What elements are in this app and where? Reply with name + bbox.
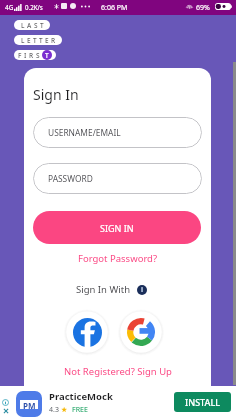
staticText: PM xyxy=(23,400,36,409)
staticText: FREE xyxy=(72,405,88,415)
button[interactable]: Forgot Password? xyxy=(78,252,158,265)
staticText: T xyxy=(40,21,44,30)
staticText: T xyxy=(33,36,37,45)
staticText: 4.3 xyxy=(49,405,59,415)
staticText: ★ xyxy=(61,406,68,414)
button[interactable]: Not Registered? Sign Up xyxy=(64,365,172,378)
staticText: F xyxy=(18,51,22,60)
staticText: Sign In xyxy=(33,85,79,104)
staticText: E xyxy=(45,36,49,45)
staticText: 6:06 PM xyxy=(101,3,128,13)
button[interactable]: PASSWORD xyxy=(33,163,202,194)
button[interactable]: USERNAME/EMAIL xyxy=(33,117,202,148)
staticText: INSTALL xyxy=(185,396,221,408)
button[interactable]: Close ad xyxy=(3,408,9,414)
staticText: 69% xyxy=(196,3,210,13)
staticText: L xyxy=(21,36,25,45)
staticText: PASSWORD xyxy=(48,173,93,184)
staticText: i xyxy=(141,285,144,295)
staticText: 4G xyxy=(5,3,14,12)
staticText: E xyxy=(27,36,31,45)
button[interactable]: SIGN IN xyxy=(33,211,201,244)
staticText: S xyxy=(36,51,40,60)
staticText: T xyxy=(39,36,43,45)
button[interactable]: Ad information xyxy=(2,399,9,406)
staticText: S xyxy=(34,21,38,30)
staticText: I xyxy=(24,51,27,60)
staticText: Sign In With xyxy=(76,283,130,296)
button[interactable]: INSTALL xyxy=(174,392,231,412)
staticText: A xyxy=(27,21,32,30)
staticText: 0.2K/s xyxy=(25,3,43,11)
button[interactable]: Information xyxy=(137,285,147,295)
staticText: L xyxy=(21,21,25,30)
button[interactable]: Sign in with Google xyxy=(118,309,164,355)
staticText: USERNAME/EMAIL xyxy=(48,127,121,138)
staticText: T xyxy=(45,51,49,60)
button[interactable]: Sign in with Facebook xyxy=(64,309,110,355)
staticText: R xyxy=(51,36,56,45)
staticText: R xyxy=(29,51,34,60)
staticText: PracticeMock xyxy=(49,390,113,403)
staticText: SIGN IN xyxy=(100,222,134,234)
